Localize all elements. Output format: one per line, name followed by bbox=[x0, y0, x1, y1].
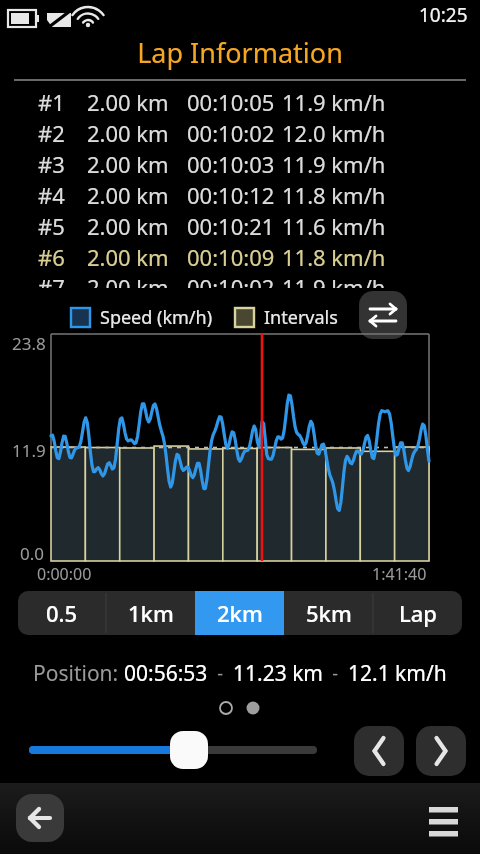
staticText: 00:10:12 bbox=[187, 180, 275, 210]
staticText: 00:10:02 bbox=[187, 272, 275, 288]
staticText: 2.00 km bbox=[87, 149, 169, 179]
staticText: 12.0 km/h bbox=[282, 118, 386, 148]
button[interactable]: #1 bbox=[0, 86, 480, 117]
button[interactable]: #7 bbox=[0, 272, 480, 288]
staticText: 11.8 km/h bbox=[282, 242, 386, 272]
button[interactable]: Previous bbox=[354, 726, 404, 776]
staticText: 5km bbox=[306, 598, 352, 628]
staticText: 11.9 km/h bbox=[282, 272, 386, 288]
button[interactable] bbox=[18, 726, 318, 774]
staticText: #3 bbox=[38, 149, 65, 179]
staticText: 2km bbox=[217, 598, 263, 628]
staticText: 00:10:21 bbox=[187, 211, 275, 241]
button[interactable]: Swap axes bbox=[359, 291, 407, 339]
staticText: - bbox=[323, 661, 348, 686]
staticText: #4 bbox=[38, 180, 65, 210]
staticText: #1 bbox=[38, 87, 65, 117]
staticText: 11.9 km/h bbox=[282, 87, 386, 117]
button[interactable]: 5km bbox=[284, 591, 373, 635]
staticText: Speed (km/h) bbox=[100, 305, 213, 330]
staticText: 11.9 km/h bbox=[282, 149, 386, 179]
button[interactable]: 0.5 bbox=[18, 591, 106, 635]
staticText: 2.00 km bbox=[87, 211, 169, 241]
staticText: #2 bbox=[38, 118, 65, 148]
staticText: #5 bbox=[38, 211, 65, 241]
staticText: 23.8 bbox=[12, 332, 46, 355]
staticText: 2.00 km bbox=[87, 272, 169, 288]
button[interactable]: Lap bbox=[373, 591, 462, 635]
staticText: Intervals bbox=[264, 305, 338, 330]
staticText: 00:10:09 bbox=[187, 242, 275, 272]
staticText: 2.00 km bbox=[87, 118, 169, 148]
staticText: #7 bbox=[38, 272, 65, 288]
staticText: 11.6 km/h bbox=[282, 211, 386, 241]
button[interactable]: #4 bbox=[0, 179, 480, 210]
staticText: 12.1 km/h bbox=[348, 659, 447, 688]
staticText: 1km bbox=[128, 598, 174, 628]
button[interactable]: #6 bbox=[0, 241, 480, 272]
button[interactable]: 2km bbox=[195, 591, 284, 635]
staticText: 2.00 km bbox=[87, 87, 169, 117]
staticText: #6 bbox=[38, 242, 65, 272]
staticText: 11.9 bbox=[12, 439, 46, 462]
staticText: 11.8 km/h bbox=[282, 180, 386, 210]
staticText: Lap bbox=[399, 598, 437, 628]
staticText: 00:10:03 bbox=[187, 149, 275, 179]
staticText: 00:56:53 bbox=[124, 659, 208, 688]
button[interactable]: #3 bbox=[0, 148, 480, 179]
staticText: - bbox=[208, 661, 233, 686]
button[interactable]: Menu bbox=[420, 795, 468, 843]
button[interactable]: Next bbox=[416, 726, 466, 776]
staticText: 00:10:02 bbox=[187, 118, 275, 148]
button[interactable]: #2 bbox=[0, 117, 480, 148]
staticText: 0.5 bbox=[46, 598, 78, 628]
button[interactable]: 1km bbox=[106, 591, 195, 635]
button[interactable]: #5 bbox=[0, 210, 480, 241]
staticText: 1:41:40 bbox=[372, 563, 427, 585]
staticText: 2.00 km bbox=[87, 180, 169, 210]
staticText: 00:10:05 bbox=[187, 87, 275, 117]
staticText: 0.0 bbox=[20, 542, 45, 565]
staticText: 10:25 bbox=[419, 2, 468, 28]
staticText: 2.00 km bbox=[87, 242, 169, 272]
staticText: Position: bbox=[33, 659, 124, 688]
staticText: Lap Information bbox=[0, 34, 480, 71]
staticText: 0:00:00 bbox=[37, 563, 92, 585]
staticText: 11.23 km bbox=[233, 659, 323, 688]
button[interactable]: Back bbox=[16, 794, 64, 842]
